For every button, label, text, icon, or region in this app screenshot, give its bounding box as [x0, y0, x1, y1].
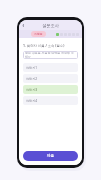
button[interactable]: 항목 내용을 서술형 답변을 작성해 주세요: [23, 51, 78, 59]
button[interactable]: 제출: [23, 151, 78, 161]
staticText: 1. 참여자 이름 / 소속 (필수): [23, 43, 65, 48]
button[interactable]: Step 1: [56, 33, 59, 36]
button[interactable]: 선택지3: [23, 85, 78, 94]
button[interactable]: 선택지4: [23, 96, 78, 105]
staticText: 항목 내용을 서술형 답변을 작성해 주세요: [25, 51, 76, 59]
button[interactable]: Back: [21, 23, 26, 28]
button[interactable]: 선택지2: [23, 74, 78, 83]
button[interactable]: 선택지1: [23, 63, 78, 72]
staticText: 진행중: [34, 32, 43, 36]
staticText: 설문조사: [42, 23, 59, 28]
staticText: 선택지2: [26, 77, 38, 81]
staticText: 제출: [47, 154, 55, 159]
staticText: 선택지3: [26, 88, 38, 92]
staticText: 선택지1: [26, 66, 38, 70]
staticText: 선택지4: [26, 99, 38, 103]
